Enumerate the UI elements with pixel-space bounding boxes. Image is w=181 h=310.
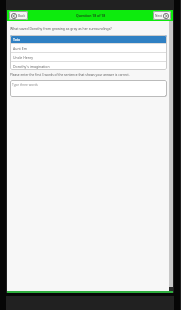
staticText: What saved Dorothy from growing as gray … (10, 26, 112, 31)
staticText: Next (155, 14, 162, 18)
button[interactable]: Toto (10, 35, 167, 43)
staticText: Back (18, 14, 26, 18)
staticText: Type three words (12, 83, 38, 87)
button[interactable]: Aunt Em (10, 44, 167, 52)
staticText: Question 18 of 18 (76, 13, 106, 18)
button[interactable]: Type three words (10, 80, 167, 97)
staticText: Toto (13, 37, 21, 42)
button[interactable]: Uncle Henry (10, 53, 167, 61)
button[interactable]: Next (153, 11, 171, 20)
staticText: Please enter the first 3 words of the se… (10, 73, 130, 77)
staticText: Dorothy's imagination (13, 64, 50, 69)
button[interactable]: Back (9, 11, 28, 20)
button[interactable]: Dorothy's imagination (10, 62, 167, 70)
staticText: Uncle Henry (13, 55, 34, 60)
staticText: Aunt Em (13, 46, 27, 51)
